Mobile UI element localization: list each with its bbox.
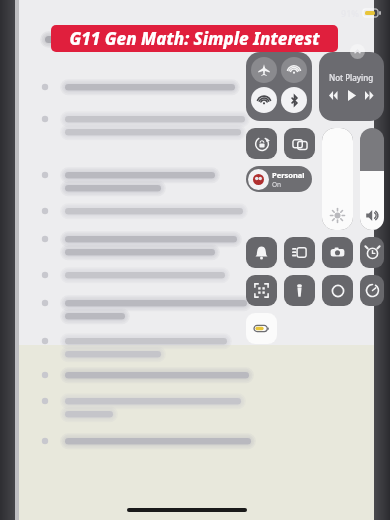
button[interactable]: Code Scanner	[246, 275, 277, 306]
staticText: Personal	[272, 170, 305, 180]
button[interactable]: G11 Gen Math: Simple Interest	[51, 25, 338, 52]
button[interactable]: Hearing	[246, 237, 277, 268]
button[interactable]: Dark Mode	[322, 275, 353, 306]
button[interactable]: Close Control Center	[350, 44, 365, 59]
button[interactable]: Bluetooth	[281, 87, 307, 113]
button[interactable]: Timer	[360, 275, 384, 306]
button[interactable]: AirDrop	[281, 57, 307, 83]
button[interactable]	[322, 128, 353, 230]
button[interactable]: Camera	[322, 237, 353, 268]
button[interactable]: Text Size	[284, 237, 315, 268]
button[interactable]: Not Playing	[319, 52, 384, 121]
staticText: On	[272, 180, 282, 189]
button[interactable]: Airplane Mode	[251, 57, 277, 83]
button[interactable]: Wi-Fi	[251, 87, 277, 113]
button[interactable]: Screen Mirroring	[284, 128, 315, 159]
staticText: G11 Gen Math: Simple Interest	[69, 27, 320, 50]
button[interactable]: Personal	[246, 166, 312, 192]
button[interactable]	[360, 128, 384, 230]
button[interactable]: Rotation Lock	[246, 128, 277, 159]
button[interactable]: Flashlight	[284, 275, 315, 306]
button[interactable]: Alarm	[360, 237, 384, 268]
button[interactable]: Low Power Mode	[246, 313, 277, 344]
staticText: Not Playing	[329, 72, 374, 83]
